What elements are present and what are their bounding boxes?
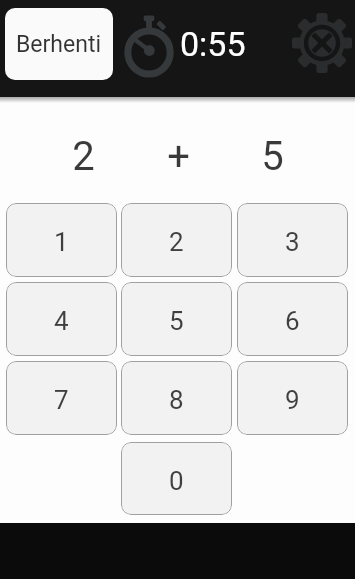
staticText: 5: [169, 306, 184, 336]
staticText: 2: [169, 227, 184, 257]
button[interactable]: 9: [237, 361, 348, 435]
staticText: 3: [285, 227, 300, 257]
button[interactable]: 0: [121, 442, 232, 515]
staticText: Berhenti: [16, 31, 102, 58]
button[interactable]: 4: [6, 282, 117, 356]
staticText: 0:55: [180, 24, 246, 64]
staticText: 6: [285, 306, 300, 336]
button[interactable]: Berhenti: [5, 8, 113, 80]
staticText: 4: [54, 306, 69, 336]
button[interactable]: [292, 13, 352, 73]
button[interactable]: 7: [6, 361, 117, 435]
staticText: 8: [169, 385, 184, 415]
button[interactable]: 2: [121, 203, 232, 277]
staticText: +: [167, 133, 190, 180]
staticText: 5: [261, 133, 284, 180]
button[interactable]: 5: [121, 282, 232, 356]
button[interactable]: 3: [237, 203, 348, 277]
staticText: 1: [54, 227, 69, 257]
button[interactable]: 1: [6, 203, 117, 277]
staticText: 0: [169, 466, 184, 496]
button[interactable]: 6: [237, 282, 348, 356]
button[interactable]: 8: [121, 361, 232, 435]
staticText: 9: [285, 385, 300, 415]
staticText: 2: [72, 133, 95, 180]
staticText: 7: [54, 385, 69, 415]
